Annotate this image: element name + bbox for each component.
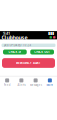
button[interactable]: Alerts — [14, 76, 28, 89]
button[interactable]: Messages — [28, 76, 43, 89]
button[interactable]: Online — [49, 36, 52, 38]
staticText: CHECK IN — [8, 50, 21, 54]
staticText: More — [46, 83, 53, 87]
staticText: Feed — [4, 83, 11, 87]
staticText: Messages — [30, 83, 42, 87]
button[interactable]: Feed — [0, 76, 14, 89]
staticText: ▮▮▮ — [48, 31, 54, 35]
staticText: EMERGENCY ALERT — [16, 61, 41, 65]
staticText: CHECK OUT — [34, 50, 50, 54]
button[interactable]: Record — [53, 36, 55, 38]
staticText: 9:41 — [3, 30, 10, 36]
button[interactable]: EMERGENCY ALERT — [2, 58, 55, 68]
button[interactable]: More — [43, 76, 57, 89]
button[interactable]: CHECK IN — [3, 49, 27, 54]
button[interactable]: CHECK OUT — [30, 49, 54, 54]
staticText: Alerts — [17, 83, 25, 87]
staticText: Clubhouse — [1, 34, 27, 41]
staticText: LAST UPDATED 10:24 — [3, 43, 31, 47]
